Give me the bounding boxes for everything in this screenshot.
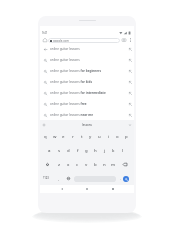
button[interactable]: l [118, 143, 127, 157]
staticText: h [94, 147, 97, 153]
staticText: f [77, 147, 79, 153]
staticText: y [89, 133, 92, 139]
button[interactable]: w [50, 129, 59, 143]
button[interactable]: online guitar lessons for kids [40, 76, 134, 87]
button[interactable]: Insert suggestion [127, 90, 133, 96]
button[interactable]: ?123 [40, 171, 51, 185]
button[interactable]: Recent apps [109, 185, 117, 193]
staticText: k [112, 147, 115, 153]
button[interactable]: Search by image [120, 37, 128, 43]
staticText: u [98, 133, 101, 139]
button[interactable]: y [86, 129, 95, 143]
staticText: , [58, 176, 59, 181]
staticText: s [58, 147, 61, 153]
button[interactable]: j [100, 143, 109, 157]
button[interactable]: s [54, 143, 64, 157]
staticText: v [85, 161, 88, 167]
staticText: i [108, 133, 110, 139]
staticText: x [67, 161, 70, 167]
staticText: . [120, 176, 121, 181]
staticText: a [48, 147, 51, 153]
button[interactable]: Insert suggestion [127, 68, 133, 74]
button[interactable]: t [77, 129, 86, 143]
button[interactable]: Home [83, 185, 91, 193]
staticText: j [104, 147, 106, 153]
button[interactable]: Home [41, 37, 48, 43]
button[interactable]: Backspace [118, 157, 131, 171]
button[interactable]: x [64, 157, 73, 171]
staticText: e [62, 133, 65, 139]
button[interactable]: online guitar lessons [40, 43, 134, 54]
button[interactable]: Expand [128, 123, 132, 127]
button[interactable]: v [82, 157, 91, 171]
button[interactable]: Switch language [64, 171, 73, 185]
button[interactable]: k [109, 143, 118, 157]
staticText: online guitar lessons [50, 47, 127, 51]
button[interactable]: Shift [40, 157, 54, 171]
button[interactable]: e [59, 129, 68, 143]
button[interactable]: Google [42, 123, 46, 127]
staticText: q [44, 133, 47, 139]
staticText: online guitar lessons near me [50, 113, 127, 117]
staticText: online guitar lessons free [50, 102, 127, 106]
button[interactable]: q [40, 129, 50, 143]
staticText: ?123 [43, 176, 49, 180]
staticText: 9:41 [42, 31, 48, 35]
staticText: o [116, 133, 119, 139]
staticText: r [72, 133, 74, 139]
button[interactable]: d [64, 143, 73, 157]
button[interactable]: m [109, 157, 118, 171]
staticText: p [125, 133, 128, 139]
staticText: n [103, 161, 106, 167]
button[interactable]: a [44, 143, 54, 157]
staticText: google.com [53, 39, 70, 43]
staticText: l [122, 147, 124, 153]
staticText: online guitar lessons for intermediate [50, 91, 127, 95]
staticText: online guitar lessons [50, 58, 127, 62]
button[interactable]: Insert suggestion [127, 79, 133, 85]
button[interactable]: More options [128, 37, 133, 43]
staticText: c [76, 161, 79, 167]
button[interactable]: o [113, 129, 122, 143]
staticText: g [85, 147, 88, 153]
button[interactable]: c [73, 157, 82, 171]
button[interactable]: r [68, 129, 77, 143]
staticText: t [81, 133, 83, 139]
button[interactable]: n [100, 157, 109, 171]
button[interactable]: online guitar lessons [40, 54, 134, 65]
button[interactable]: online guitar lessons near me [40, 109, 134, 120]
button[interactable]: online guitar lessons free [40, 98, 134, 109]
staticText: z [58, 161, 61, 167]
button[interactable]: online guitar lessons for beginners [40, 65, 134, 76]
staticText: m [111, 161, 116, 167]
staticText: lessons [82, 123, 92, 127]
button[interactable]: Insert suggestion [127, 112, 133, 118]
button[interactable]: z [54, 157, 64, 171]
staticText: online guitar lessons for beginners [50, 69, 127, 73]
button[interactable]: Search [123, 176, 129, 182]
staticText: w [53, 133, 57, 139]
staticText: d [67, 147, 70, 153]
button[interactable]: Insert suggestion [127, 46, 133, 52]
button[interactable]: Insert suggestion [127, 101, 133, 107]
staticText: online guitar lessons for kids [50, 80, 127, 84]
button[interactable]: online guitar lessons for intermediate [40, 87, 134, 98]
button[interactable]: i [104, 129, 113, 143]
button[interactable]: u [95, 129, 104, 143]
button[interactable]: Comma [54, 171, 63, 185]
button[interactable]: g [82, 143, 91, 157]
button[interactable]: Back [58, 185, 66, 193]
button[interactable]: p [122, 129, 131, 143]
button[interactable]: f [73, 143, 82, 157]
staticText: b [94, 161, 97, 167]
button[interactable]: Insert suggestion [127, 57, 133, 63]
button[interactable]: Period [116, 171, 125, 185]
button[interactable]: google.com [48, 38, 120, 43]
button[interactable]: b [91, 157, 100, 171]
button[interactable]: h [91, 143, 100, 157]
